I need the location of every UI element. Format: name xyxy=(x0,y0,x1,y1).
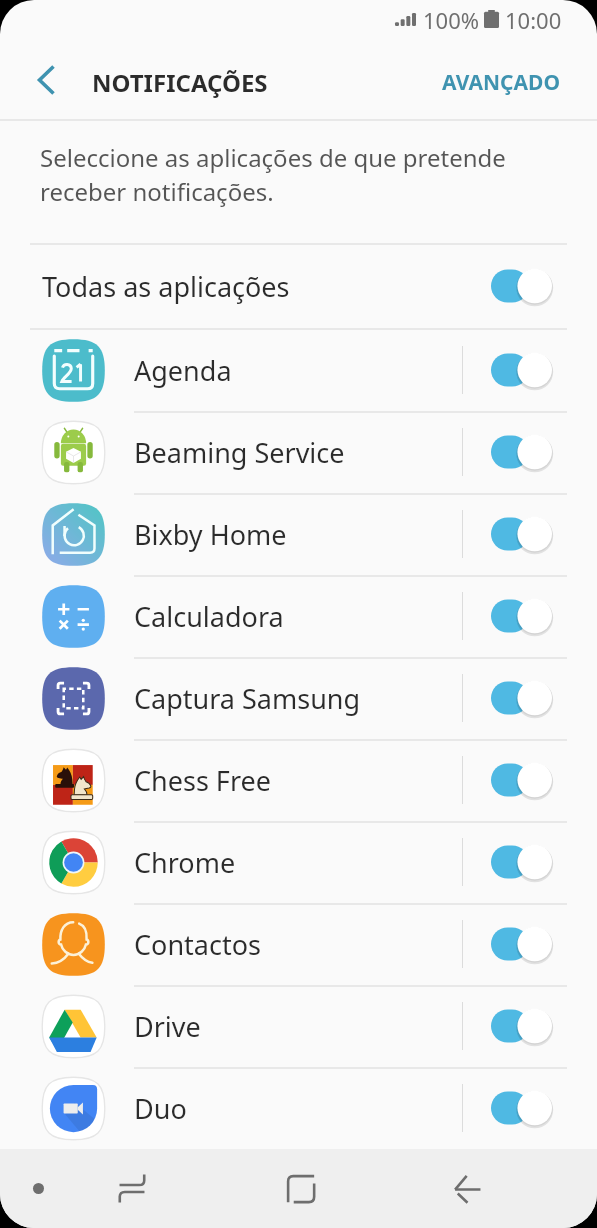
button[interactable]: Duo xyxy=(0,1067,597,1149)
staticText: Todas as aplicações xyxy=(42,268,290,305)
staticText: Captura Samsung xyxy=(134,680,361,717)
button[interactable]: Back xyxy=(417,1149,517,1228)
button[interactable]: Bixby Home xyxy=(0,493,597,575)
button[interactable]: Back xyxy=(22,60,68,106)
staticText: Bixby Home xyxy=(134,516,287,553)
button[interactable]: Captura Samsung xyxy=(0,657,597,739)
button[interactable]: Beaming Service xyxy=(0,411,597,493)
staticText: Chrome xyxy=(134,844,236,881)
staticText: Drive xyxy=(134,1008,201,1045)
button[interactable]: Hide navigation bar xyxy=(10,1149,66,1228)
staticText: 100% xyxy=(423,5,480,33)
staticText: AVANÇADO xyxy=(442,68,561,97)
button[interactable]: Chess Free xyxy=(0,739,597,821)
button[interactable]: Calculadora xyxy=(0,575,597,657)
staticText: Beaming Service xyxy=(134,434,345,471)
staticText: Chess Free xyxy=(134,762,271,799)
staticText: NOTIFICAÇÕES xyxy=(92,66,268,99)
button[interactable]: Contactos xyxy=(0,903,597,985)
staticText: Duo xyxy=(134,1090,187,1127)
staticText: Agenda xyxy=(134,352,232,389)
button[interactable]: Home xyxy=(251,1149,351,1228)
button[interactable]: Chrome xyxy=(0,821,597,903)
staticText: 10:00 xyxy=(505,5,562,33)
button[interactable]: Recent apps xyxy=(82,1149,182,1228)
staticText: Seleccione as aplicações de que pretende… xyxy=(40,141,545,209)
button[interactable]: Drive xyxy=(0,985,597,1067)
staticText: Calculadora xyxy=(134,598,284,635)
button[interactable]: AVANÇADO xyxy=(418,54,585,111)
button[interactable]: Agenda xyxy=(0,329,597,411)
button[interactable]: Todas as aplicações xyxy=(0,244,597,328)
staticText: Contactos xyxy=(134,926,261,963)
